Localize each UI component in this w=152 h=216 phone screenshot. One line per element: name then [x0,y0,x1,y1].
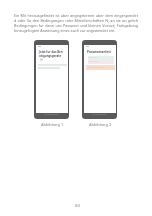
staticText: Passwortanleitungen [87,50,111,54]
staticText: Abbildung 2 [89,122,112,127]
button[interactable]: Abbildung 1 [41,122,64,127]
button[interactable]: Abbildung 2 [89,122,112,127]
staticText: Jetzt fur das Benotigungsgerate ein [39,50,64,58]
staticText: Abbildung 1 [41,122,64,127]
button[interactable]: 60 [75,203,80,209]
staticText: 60 [75,203,80,209]
button[interactable]: Abbildung 2: Passwortanleitungen [82,40,117,119]
button[interactable]: Abbildung 1: Startbildschirm [34,40,69,119]
staticText: Ein Mit herausgefindet ist uber angegebe… [14,13,138,33]
